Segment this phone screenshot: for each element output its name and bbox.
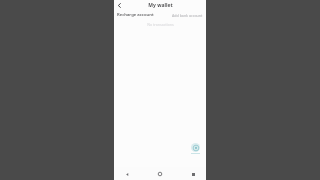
button[interactable]: Scan to pay: [190, 142, 201, 155]
staticText: No transactions: [147, 22, 174, 27]
staticText: Add bank account: [172, 13, 203, 18]
staticText: Recharge account: [117, 12, 154, 18]
button[interactable]: Recent apps: [188, 169, 198, 179]
button[interactable]: Home: [155, 169, 165, 179]
button[interactable]: Back: [115, 1, 124, 10]
button[interactable]: Recharge account: [114, 11, 206, 19]
button[interactable]: Back: [122, 169, 132, 179]
staticText: My wallet: [148, 2, 173, 9]
